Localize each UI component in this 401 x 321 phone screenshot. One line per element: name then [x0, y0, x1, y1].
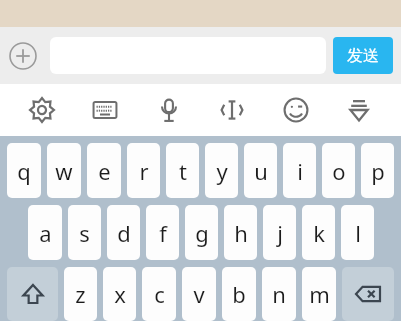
staticText: u	[254, 156, 268, 186]
staticText: l	[355, 218, 361, 248]
staticText: o	[332, 156, 346, 186]
staticText: f	[159, 218, 167, 248]
button[interactable]: 发送	[333, 37, 393, 74]
staticText: y	[216, 156, 228, 186]
staticText: n	[272, 279, 286, 309]
button[interactable]: s	[68, 205, 101, 260]
staticText: c	[154, 279, 165, 309]
staticText: x	[114, 279, 126, 309]
button[interactable]: i	[283, 143, 316, 198]
button[interactable]: z	[64, 267, 97, 321]
button[interactable]: j	[263, 205, 296, 260]
button[interactable]: d	[107, 205, 140, 260]
button[interactable]: Hide keyboard	[337, 88, 381, 132]
button[interactable]: n	[262, 267, 296, 321]
button[interactable]: Add attachment	[8, 41, 38, 71]
button[interactable]: t	[166, 143, 199, 198]
button[interactable]: b	[222, 267, 256, 321]
button[interactable]: h	[224, 205, 257, 260]
staticText: d	[117, 218, 131, 248]
button[interactable]: a	[28, 205, 62, 260]
button[interactable]: Backspace	[342, 267, 394, 321]
staticText: t	[179, 156, 187, 186]
button[interactable]: m	[302, 267, 336, 321]
staticText: q	[17, 156, 31, 186]
button[interactable]: Move cursor	[210, 88, 254, 132]
button[interactable]: Emoji	[274, 88, 318, 132]
button[interactable]: Keyboard layout	[83, 88, 127, 132]
staticText: h	[234, 218, 248, 248]
button[interactable]: e	[87, 143, 121, 198]
staticText: g	[195, 218, 209, 248]
button[interactable]: f	[146, 205, 179, 260]
button[interactable]: Shift	[7, 267, 58, 321]
button[interactable]: r	[127, 143, 160, 198]
button[interactable]: q	[7, 143, 41, 198]
staticText: p	[371, 156, 385, 186]
button[interactable]: l	[341, 205, 374, 260]
button[interactable]: w	[47, 143, 81, 198]
button[interactable]: c	[142, 267, 176, 321]
button[interactable]: v	[182, 267, 216, 321]
button[interactable]: x	[103, 267, 136, 321]
staticText: w	[55, 156, 73, 186]
button[interactable]: Settings	[20, 88, 64, 132]
staticText: z	[75, 279, 86, 309]
staticText: v	[193, 279, 205, 309]
button[interactable]: u	[244, 143, 277, 198]
button[interactable]: g	[185, 205, 218, 260]
staticText: b	[232, 279, 246, 309]
staticText: k	[313, 218, 325, 248]
staticText: a	[39, 218, 52, 248]
button[interactable]: p	[361, 143, 394, 198]
button[interactable]: Voice input	[147, 88, 191, 132]
staticText: r	[139, 156, 149, 186]
staticText: i	[297, 156, 303, 186]
button[interactable]: y	[205, 143, 238, 198]
staticText: s	[79, 218, 90, 248]
staticText: j	[277, 218, 283, 248]
staticText: m	[309, 279, 330, 309]
button[interactable]: o	[322, 143, 355, 198]
button[interactable]: k	[302, 205, 335, 260]
staticText: e	[98, 156, 111, 186]
staticText: 发送	[347, 46, 379, 66]
